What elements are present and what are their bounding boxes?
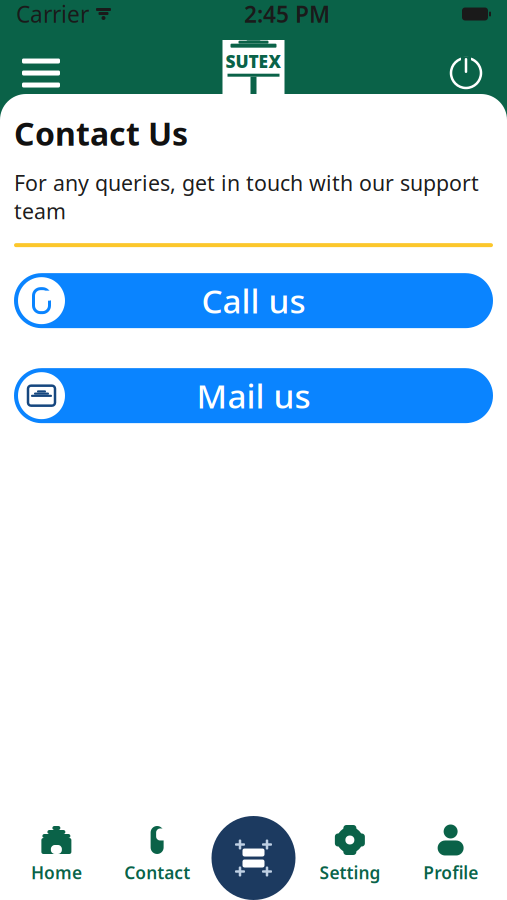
staticText: 2:45 PM <box>244 0 330 29</box>
button[interactable]: Log out <box>439 46 493 100</box>
staticText: Mail us <box>196 373 310 418</box>
staticText: Carrier <box>16 0 89 29</box>
button[interactable]: Home <box>6 808 107 900</box>
staticText: SUTEX <box>225 50 281 73</box>
button[interactable]: Scan <box>211 816 295 900</box>
staticText: For any queries, get in touch with our s… <box>14 168 479 225</box>
button[interactable]: Call us <box>14 273 493 328</box>
staticText: Setting <box>319 861 380 884</box>
button[interactable]: Contact <box>107 808 208 900</box>
button[interactable]: Profile <box>400 808 501 900</box>
staticText: Call us <box>201 278 305 323</box>
staticText: Home <box>31 861 82 884</box>
button[interactable]: Setting <box>299 808 400 900</box>
staticText: Contact <box>124 861 190 884</box>
staticText: Contact Us <box>14 112 188 154</box>
button[interactable]: Menu <box>14 46 68 100</box>
staticText: Profile <box>423 861 478 884</box>
button[interactable]: Mail us <box>14 368 493 423</box>
